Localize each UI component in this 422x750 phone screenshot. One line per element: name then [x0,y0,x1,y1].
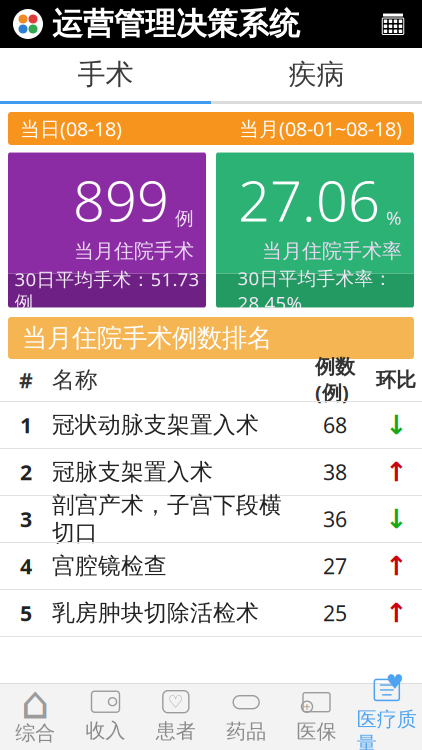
staticText: 2 [20,458,32,486]
staticText: ↓ [385,504,407,534]
staticText: 3 [20,505,32,533]
staticText: 名称 [52,366,98,394]
staticText: 当日(08-18) [20,115,122,142]
staticText: 例数(例) [315,354,355,405]
staticText: 27 [323,552,347,580]
staticText: 药品 [226,719,266,744]
staticText: 30日平均手术：51.73例 [14,267,199,314]
staticText: 30日平均手术率：28.45% [237,266,392,315]
staticText: 68 [323,411,347,439]
staticText: ↑ [385,551,407,581]
staticText: % [386,205,402,230]
button[interactable]: 手术 [0,48,211,104]
staticText: 手术 [77,57,133,92]
staticText: 剖宫产术，子宫下段横切口 [52,491,282,547]
staticText: ↑ [385,457,407,487]
button[interactable]: ⌂ [0,684,70,750]
staticText: 当月住院手术 [74,239,194,263]
staticText: 当月住院手术例数排名 [22,322,272,353]
staticText: 1 [20,411,32,439]
button[interactable]: 3 [0,496,422,543]
staticText: 5 [20,599,32,627]
staticText: 患者 [156,719,196,743]
staticText: ♡ [168,692,184,712]
staticText: 4 [20,552,32,580]
staticText: 收入 [85,718,125,743]
button[interactable]: 2 [0,449,422,496]
button[interactable]: ♡ [141,684,211,750]
staticText: 医保 [296,719,336,744]
button[interactable]: 5 [0,590,422,637]
staticText: 疾病 [288,57,344,92]
staticText: 25 [323,599,347,627]
staticText: 宫腔镜检查 [52,552,167,580]
button[interactable]: ♥ [352,684,422,750]
staticText: ♥ [386,671,404,693]
staticText: 综合 [15,721,55,745]
staticText: 当月(08-01~08-18) [239,115,402,142]
staticText: 乳房肿块切除活检术 [52,599,259,627]
staticText: ⌂ [21,677,50,728]
staticText: 899 [73,162,169,237]
button[interactable]: 1 [0,402,422,449]
staticText: 环比 [376,368,416,392]
staticText: 医疗质量 [357,707,417,750]
staticText: 冠脉支架置入术 [52,458,213,486]
button[interactable]: 收入 [70,684,141,750]
staticText: 例 [175,207,194,230]
staticText: 冠状动脉支架置入术 [52,411,259,439]
staticText: ↓ [385,410,407,440]
button[interactable]: 4 [0,543,422,590]
button[interactable]: 疾病 [211,48,422,104]
staticText: ↑ [385,598,407,628]
staticText: 当月住院手术率 [262,239,402,263]
staticText: 27.06 [238,162,380,237]
staticText: 36 [323,505,347,533]
button[interactable]: Calendar [376,7,410,41]
staticText: 38 [323,458,347,486]
button[interactable]: + [281,684,352,750]
button[interactable]: 药品 [211,684,281,750]
staticText: 运营管理决策系统 [52,5,300,43]
staticText: # [19,366,33,394]
staticText: + [303,699,310,715]
